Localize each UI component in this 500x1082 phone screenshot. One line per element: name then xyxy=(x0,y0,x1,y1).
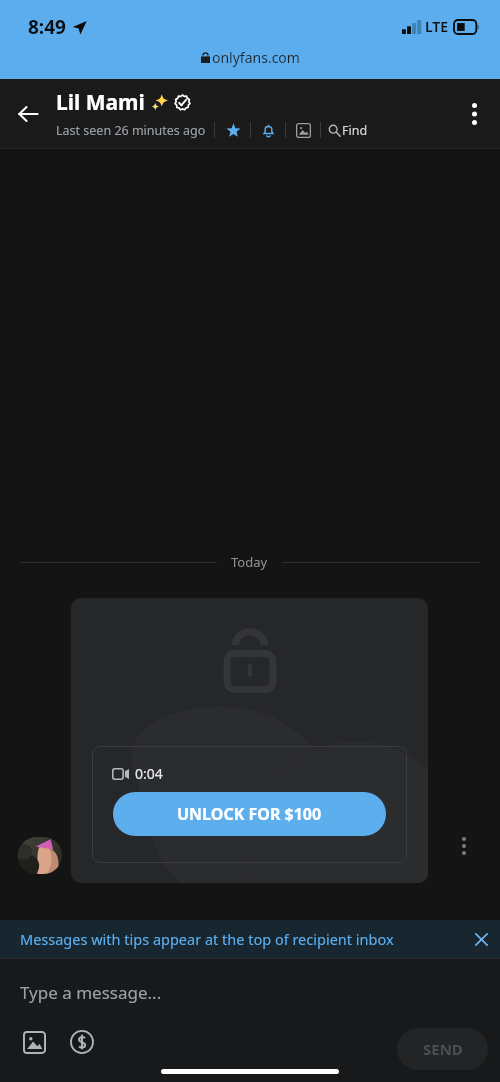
button[interactable]: SEND xyxy=(397,1028,488,1070)
button[interactable]: Find xyxy=(328,122,368,139)
staticText: LTE xyxy=(425,17,449,36)
button[interactable]: Send tip xyxy=(62,1022,102,1062)
button[interactable]: Media xyxy=(293,120,313,140)
staticText: Lil Mami xyxy=(56,88,145,117)
button[interactable]: UNLOCK FOR $100 xyxy=(113,792,386,836)
staticText: 8:49 xyxy=(28,14,66,40)
staticText: Find xyxy=(342,122,368,139)
staticText: Type a message... xyxy=(20,981,162,1004)
staticText: UNLOCK FOR $100 xyxy=(177,803,322,825)
staticText: Last seen 26 minutes ago xyxy=(56,122,206,139)
button[interactable]: Message options xyxy=(453,829,475,863)
button[interactable]: Lil Mami xyxy=(56,88,448,140)
staticText: 0:04 xyxy=(135,764,163,783)
staticText: Today xyxy=(231,553,268,571)
button[interactable]: Profile photo xyxy=(18,837,62,874)
staticText: onlyfans.com xyxy=(212,48,300,67)
button[interactable]: Notifications xyxy=(258,120,278,140)
button[interactable]: Dismiss xyxy=(462,920,500,958)
button[interactable]: Favorite xyxy=(223,120,243,140)
staticText: Messages with tips appear at the top of … xyxy=(20,929,394,949)
staticText: SEND xyxy=(423,1039,463,1059)
button[interactable]: 0:04 xyxy=(71,598,428,883)
button[interactable]: Back xyxy=(0,79,56,148)
button[interactable]: More options xyxy=(448,79,500,148)
button[interactable]: Attach image xyxy=(14,1022,54,1062)
